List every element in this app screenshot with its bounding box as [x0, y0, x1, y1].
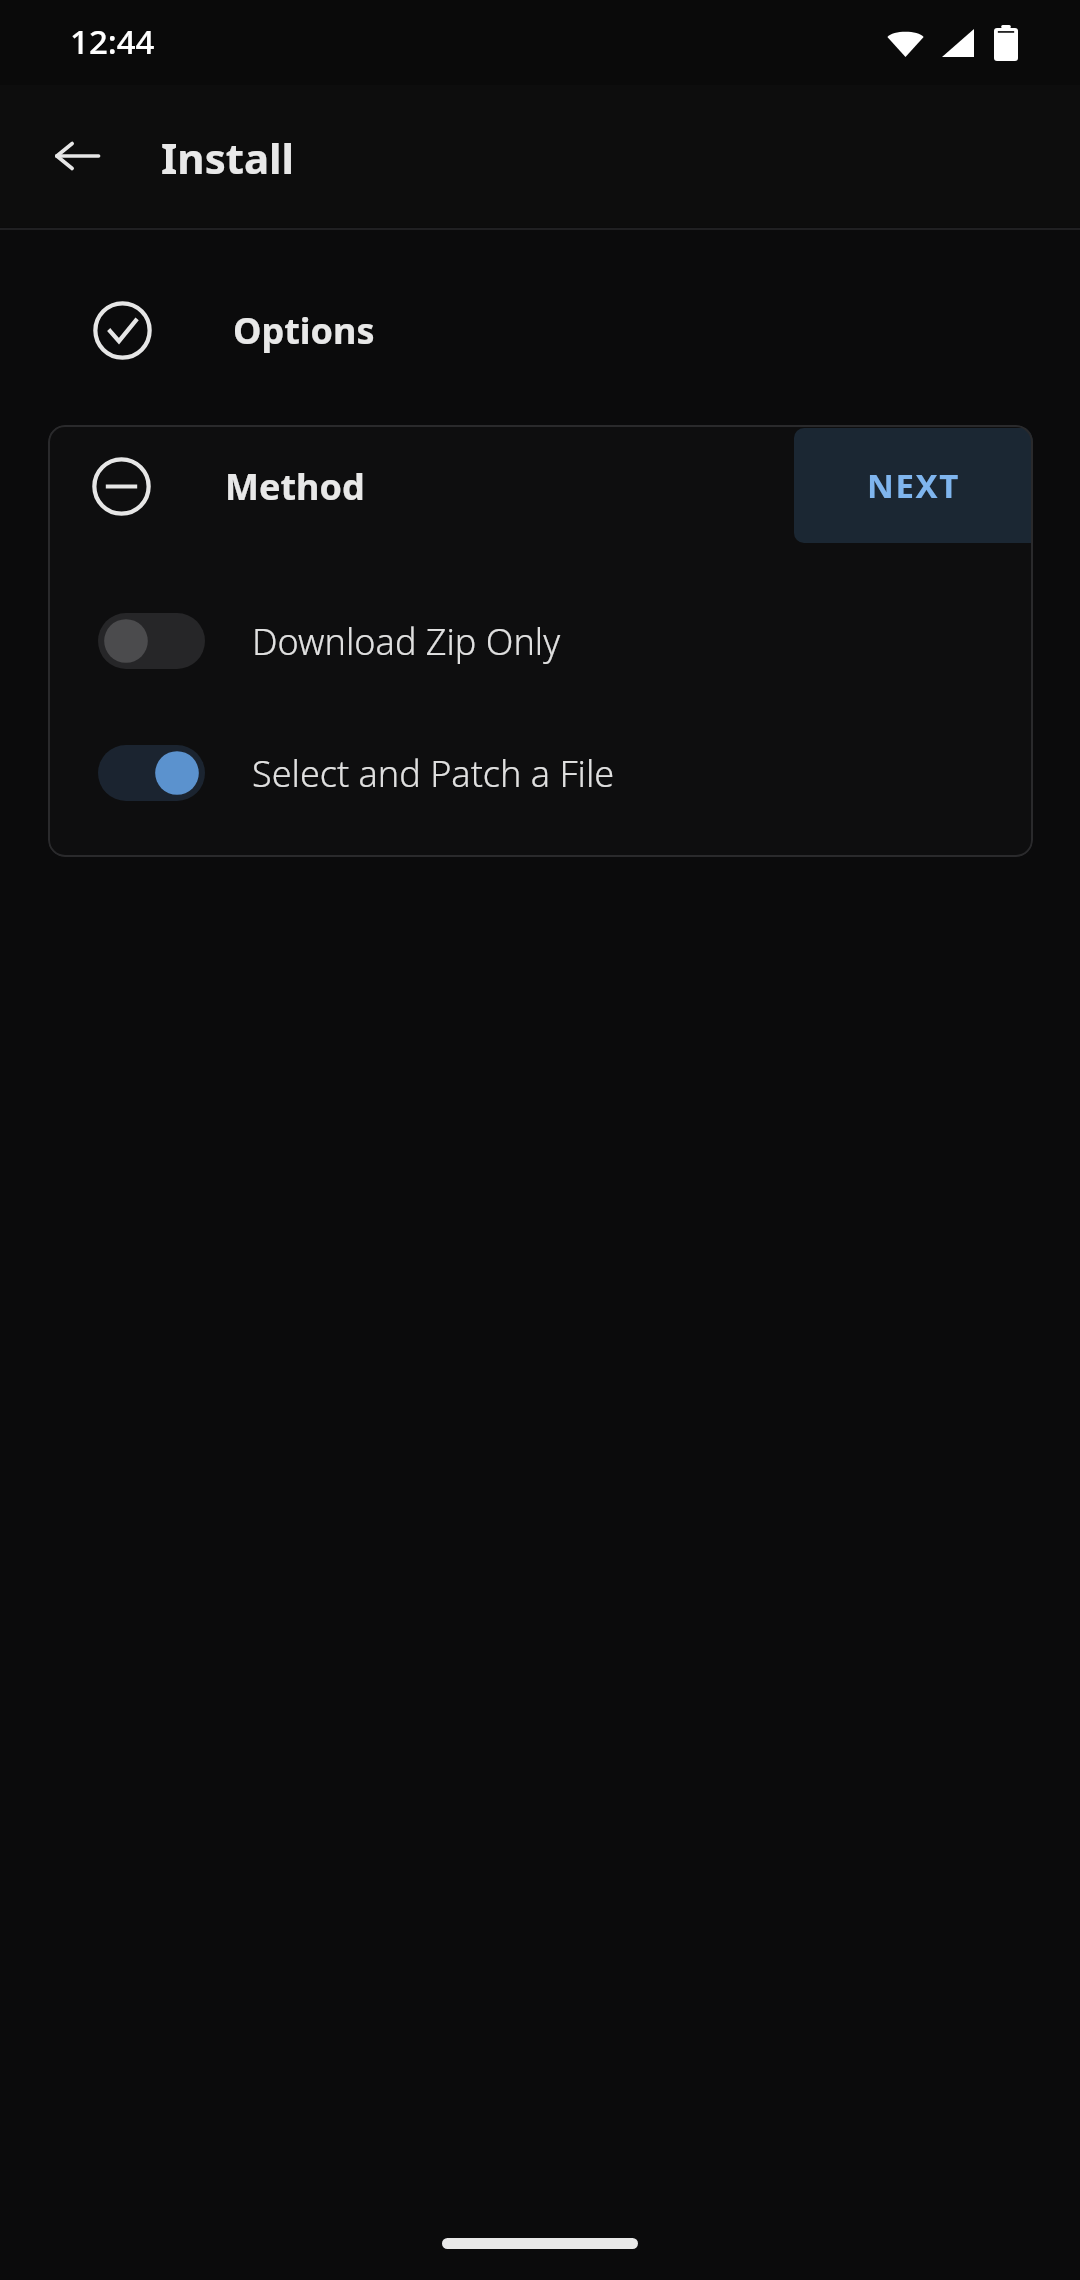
- staticText: NEXT: [867, 463, 960, 508]
- staticText: Select and Patch a File: [252, 749, 615, 798]
- staticText: Method: [225, 462, 365, 511]
- button[interactable]: Select and Patch a File: [48, 745, 1033, 801]
- staticText: Download Zip Only: [252, 617, 561, 666]
- staticText: 12:44: [70, 19, 155, 64]
- button[interactable]: Method: [48, 425, 1033, 547]
- staticText: Options: [233, 306, 375, 355]
- button[interactable]: Download Zip Only: [48, 613, 1033, 669]
- button[interactable]: Back: [29, 108, 125, 204]
- staticText: Install: [161, 129, 295, 186]
- button[interactable]: NEXT: [794, 428, 1033, 543]
- button[interactable]: Options: [0, 292, 1080, 368]
